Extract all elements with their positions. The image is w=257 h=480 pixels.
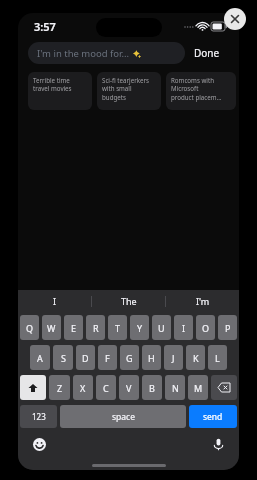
staticText: Terrible time travel movies <box>33 76 72 92</box>
button[interactable]: B <box>142 375 162 400</box>
staticText: R <box>93 322 99 334</box>
button[interactable]: Emoji <box>30 435 48 453</box>
staticText: H <box>148 352 155 364</box>
button[interactable]: D <box>76 345 95 370</box>
button[interactable]: H <box>142 345 161 370</box>
staticText: E <box>71 322 77 334</box>
button[interactable]: S <box>53 345 73 370</box>
staticText: 3:57 <box>34 19 56 34</box>
button[interactable]: The <box>92 290 165 312</box>
button[interactable]: I'm <box>166 290 239 312</box>
button[interactable]: V <box>119 375 139 400</box>
button[interactable]: Romcoms with Microsoft product placem... <box>166 72 236 110</box>
staticText: G <box>126 352 133 364</box>
button[interactable]: I'm in the mood for... <box>28 42 185 64</box>
staticText: Z <box>57 382 63 394</box>
staticText: Done <box>194 46 220 60</box>
staticText: V <box>126 382 132 394</box>
button[interactable]: Backspace <box>211 375 237 400</box>
button[interactable]: Y <box>130 315 149 340</box>
button[interactable]: I <box>174 315 193 340</box>
button[interactable]: A <box>30 345 50 370</box>
button[interactable]: G <box>120 345 139 370</box>
staticText: 123 <box>32 411 46 422</box>
button[interactable]: W <box>42 315 61 340</box>
button[interactable]: E <box>64 315 83 340</box>
staticText: F <box>105 352 110 364</box>
staticText: I <box>182 322 186 334</box>
button[interactable]: Sci-fi tearjerkers with small budgets <box>97 72 161 110</box>
button[interactable]: 123 <box>20 405 57 428</box>
button[interactable]: L <box>208 345 227 370</box>
staticText: W <box>47 322 56 334</box>
button[interactable]: Terrible time travel movies <box>28 72 92 110</box>
button[interactable]: Done <box>185 43 229 63</box>
staticText: J <box>172 352 175 364</box>
button[interactable]: Close <box>224 8 246 30</box>
button[interactable]: P <box>218 315 237 340</box>
button[interactable]: Dictate <box>209 435 227 453</box>
staticText: X <box>80 382 86 394</box>
button[interactable]: C <box>96 375 116 400</box>
button[interactable]: Shift <box>20 375 46 400</box>
button[interactable]: T <box>108 315 127 340</box>
button[interactable]: I <box>18 290 91 312</box>
staticText: M <box>194 382 203 394</box>
button[interactable]: K <box>186 345 205 370</box>
staticText: L <box>215 352 220 364</box>
staticText: P <box>225 322 231 334</box>
staticText: T <box>115 322 121 334</box>
button[interactable]: J <box>164 345 183 370</box>
staticText: send <box>203 411 223 423</box>
staticText: O <box>202 322 210 334</box>
staticText: U <box>158 322 165 334</box>
staticText: B <box>149 382 155 394</box>
button[interactable]: space <box>60 405 186 428</box>
button[interactable]: Q <box>20 315 39 340</box>
staticText: Q <box>26 322 34 334</box>
staticText: N <box>172 382 179 394</box>
staticText: Sci-fi tearjerkers with small budgets <box>102 76 149 101</box>
staticText: Y <box>137 322 143 334</box>
staticText: D <box>82 352 89 364</box>
button[interactable]: X <box>73 375 93 400</box>
staticText: A <box>37 352 43 364</box>
staticText: Romcoms with Microsoft product placem... <box>171 76 222 101</box>
button[interactable]: O <box>196 315 215 340</box>
button[interactable]: U <box>152 315 171 340</box>
staticText: C <box>103 382 109 394</box>
button[interactable]: F <box>98 345 117 370</box>
staticText: I'm in the mood for... <box>37 47 130 60</box>
button[interactable]: R <box>86 315 105 340</box>
button[interactable]: send <box>189 405 237 428</box>
button[interactable]: N <box>165 375 185 400</box>
staticText: I <box>53 295 57 307</box>
staticText: S <box>61 352 66 364</box>
staticText: K <box>193 352 199 364</box>
staticText: space <box>112 411 135 423</box>
staticText: I'm <box>196 295 210 307</box>
button[interactable]: M <box>188 375 208 400</box>
button[interactable]: Z <box>49 375 70 400</box>
staticText: The <box>121 295 137 307</box>
